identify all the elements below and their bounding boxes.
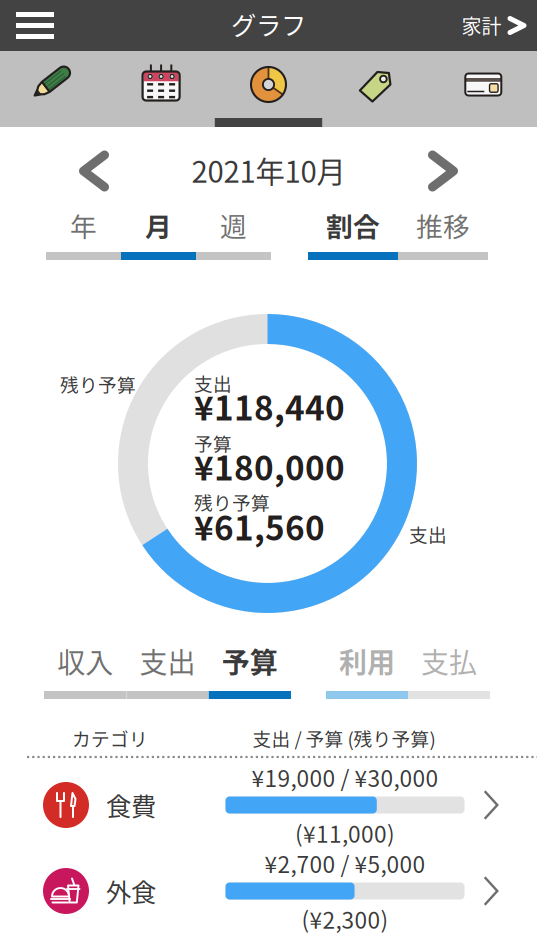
- staticText: 2021年10月: [191, 149, 345, 191]
- button[interactable]: 推移: [398, 205, 488, 275]
- button[interactable]: 割合: [308, 205, 398, 275]
- staticText: グラフ: [231, 6, 306, 42]
- staticText: 支払: [421, 641, 477, 681]
- staticText: (¥2,300): [301, 902, 388, 935]
- staticText: 予算: [194, 429, 232, 456]
- button[interactable]: Previous month: [44, 141, 144, 201]
- button[interactable]: 月: [121, 205, 196, 275]
- staticText: ¥2,700 / ¥5,000: [264, 847, 425, 879]
- staticText: ¥61,560: [194, 502, 325, 550]
- button[interactable]: 外食: [0, 848, 537, 934]
- button[interactable]: Calendar: [107, 51, 215, 118]
- button[interactable]: 年: [46, 205, 121, 275]
- staticText: カテゴリ: [72, 724, 148, 751]
- button[interactable]: 利用: [326, 639, 408, 713]
- staticText: 支出 / 予算 (残り予算): [252, 724, 435, 751]
- button[interactable]: Menu: [0, 0, 70, 51]
- staticText: (¥11,000): [295, 816, 395, 849]
- button[interactable]: Next month: [393, 141, 493, 201]
- staticText: 支出: [409, 520, 447, 547]
- staticText: 収入: [57, 641, 113, 681]
- staticText: 割合: [326, 206, 380, 244]
- staticText: 週: [220, 206, 247, 244]
- button[interactable]: 週: [196, 205, 271, 275]
- button[interactable]: Graph: [215, 51, 322, 118]
- staticText: ¥19,000 / ¥30,000: [251, 761, 438, 793]
- staticText: ¥180,000: [194, 442, 345, 490]
- button[interactable]: 支払: [408, 639, 490, 713]
- button[interactable]: Categories: [322, 51, 430, 118]
- button[interactable]: 食費: [0, 762, 537, 848]
- staticText: 推移: [416, 206, 470, 244]
- button[interactable]: 家計: [451, 0, 537, 51]
- staticText: 支出: [194, 369, 232, 396]
- button[interactable]: Cards: [430, 51, 537, 118]
- button[interactable]: Input: [0, 51, 107, 118]
- button[interactable]: 収入: [44, 639, 126, 713]
- staticText: 残り予算: [194, 488, 270, 515]
- staticText: 残り予算: [60, 370, 136, 397]
- button[interactable]: 支出: [126, 639, 209, 713]
- staticText: 予算: [222, 641, 278, 681]
- button[interactable]: 予算: [209, 639, 291, 713]
- staticText: 支出: [139, 641, 195, 681]
- staticText: ¥118,440: [194, 382, 345, 430]
- staticText: 家計: [461, 11, 501, 40]
- staticText: 食費: [106, 787, 156, 823]
- staticText: 年: [70, 206, 97, 244]
- staticText: 月: [145, 206, 172, 244]
- staticText: 外食: [106, 873, 156, 909]
- staticText: 利用: [339, 641, 395, 681]
